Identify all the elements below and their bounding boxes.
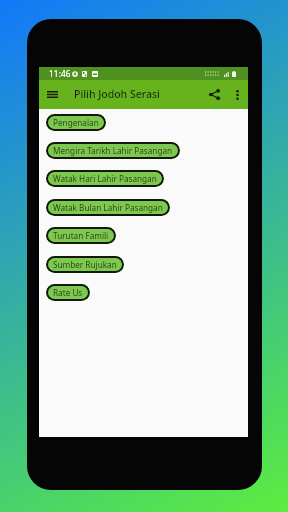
staticText: Sumber Rujukan bbox=[53, 259, 117, 270]
button[interactable]: Pengenalan bbox=[46, 114, 106, 131]
button[interactable]: Mengira Tarikh Lahir Pasangan bbox=[46, 142, 180, 159]
button[interactable]: More options bbox=[226, 80, 248, 109]
staticText: Watak Bulan Lahir Pasangan bbox=[53, 202, 163, 213]
staticText: Turutan Famili bbox=[53, 230, 109, 241]
button[interactable]: Watak Hari Lahir Pasangan bbox=[46, 170, 164, 187]
button[interactable]: Turutan Famili bbox=[46, 227, 116, 244]
staticText: Rate Us bbox=[53, 287, 83, 298]
button[interactable]: Rate Us bbox=[46, 284, 90, 301]
staticText: 11:46 bbox=[49, 68, 71, 79]
button[interactable]: Share bbox=[203, 80, 226, 109]
staticText: Pilih Jodoh Serasi bbox=[74, 87, 160, 101]
staticText: Mengira Tarikh Lahir Pasangan bbox=[53, 145, 173, 156]
staticText: Pengenalan bbox=[53, 117, 99, 128]
button[interactable]: Watak Bulan Lahir Pasangan bbox=[46, 199, 170, 216]
button[interactable]: Open navigation menu bbox=[39, 80, 65, 109]
staticText: Watak Hari Lahir Pasangan bbox=[53, 173, 157, 184]
button[interactable]: Sumber Rujukan bbox=[46, 256, 124, 273]
